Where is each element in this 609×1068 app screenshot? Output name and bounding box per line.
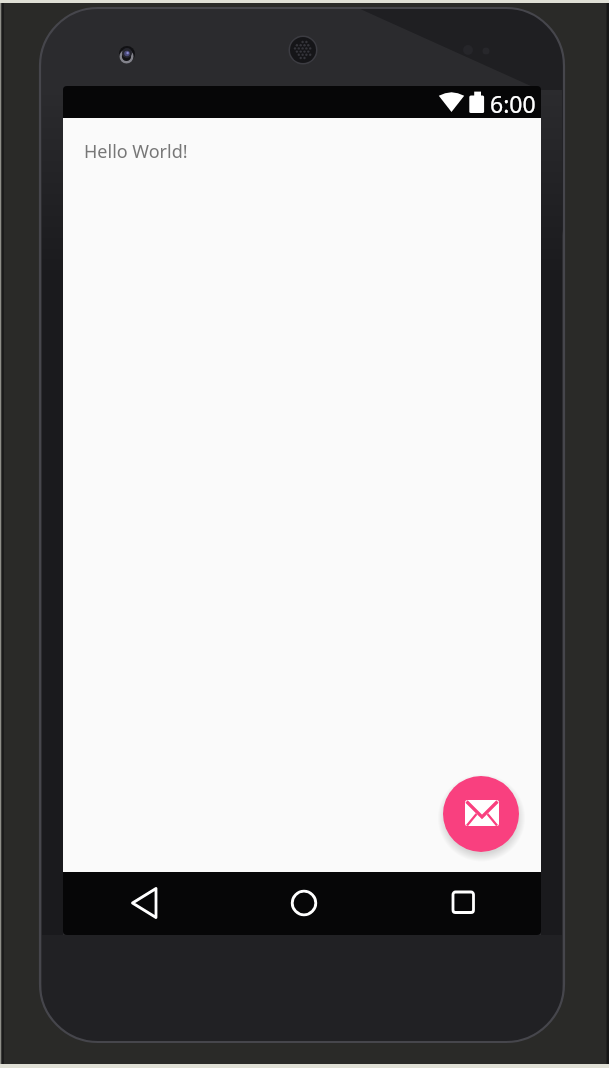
- button[interactable]: [114, 874, 174, 932]
- button[interactable]: [274, 874, 334, 932]
- button[interactable]: [443, 776, 519, 852]
- button[interactable]: [434, 874, 494, 932]
- staticText: Hello World!: [84, 139, 188, 164]
- staticText: 6:00: [490, 88, 536, 119]
